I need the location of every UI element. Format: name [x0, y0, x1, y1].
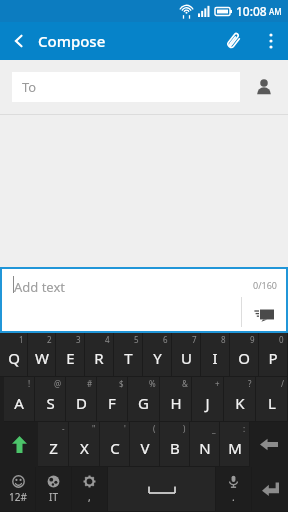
staticText: N: [199, 438, 211, 458]
button[interactable]: 0: [259, 333, 287, 376]
button[interactable]: To: [12, 72, 240, 102]
staticText: &: [182, 378, 188, 389]
staticText: L: [268, 393, 276, 413]
button[interactable]: 2: [28, 333, 55, 376]
button[interactable]: (: [130, 422, 159, 466]
staticText: J: [205, 393, 210, 413]
button[interactable]: Back: [0, 22, 38, 60]
button[interactable]: 5: [114, 333, 142, 376]
staticText: %: [149, 378, 156, 389]
staticText: 8: [221, 334, 226, 345]
staticText: ,: [88, 490, 91, 504]
button[interactable]: /: [256, 377, 287, 421]
staticText: !: [28, 378, 31, 389]
staticText: R: [94, 348, 104, 368]
staticText: IT: [49, 490, 58, 504]
staticText: Z: [49, 438, 58, 458]
button[interactable]: 8: [201, 333, 229, 376]
button[interactable]: %: [128, 377, 159, 421]
staticText: T: [124, 348, 133, 368]
staticText: 0/160: [253, 279, 277, 291]
staticText: A: [14, 393, 24, 413]
staticText: ): [183, 423, 186, 434]
staticText: D: [76, 393, 87, 413]
button[interactable]: 7: [172, 333, 200, 376]
staticText: -: [62, 423, 65, 434]
staticText: AM: [269, 6, 282, 17]
staticText: C: [110, 438, 120, 458]
button[interactable]: Shift: [0, 422, 38, 467]
button[interactable]: Add text: [2, 269, 286, 331]
staticText: 0: [279, 334, 284, 345]
button[interactable]: ?: [224, 377, 255, 421]
button[interactable]: Attach: [214, 22, 254, 60]
button[interactable]: Enter: [252, 467, 288, 511]
button[interactable]: $: [97, 377, 127, 421]
staticText: B: [170, 438, 180, 458]
staticText: /: [281, 378, 284, 389]
staticText: X: [80, 438, 89, 458]
staticText: Add text: [14, 278, 66, 296]
staticText: 6: [163, 334, 168, 345]
button[interactable]: Choose contact: [240, 60, 288, 114]
staticText: E: [66, 348, 75, 368]
staticText: 7: [192, 334, 197, 345]
button[interactable]: -: [38, 422, 68, 466]
button[interactable]: +: [192, 377, 223, 421]
button[interactable]: &: [160, 377, 191, 421]
staticText: S: [46, 393, 55, 413]
button[interactable]: 4: [85, 333, 113, 376]
button[interactable]: 1: [0, 333, 27, 376]
staticText: 3: [76, 334, 81, 345]
staticText: 2: [47, 334, 52, 345]
button[interactable]: 9: [230, 333, 258, 376]
button[interactable]: #: [66, 377, 96, 421]
staticText: Y: [153, 348, 162, 368]
staticText: F: [108, 393, 116, 413]
staticText: (: [153, 423, 156, 434]
button[interactable]: Settings: [72, 467, 107, 511]
staticText: H: [170, 393, 182, 413]
staticText: Q: [8, 348, 20, 368]
button[interactable]: ): [160, 422, 189, 466]
button[interactable]: ": [69, 422, 99, 466]
staticText: 10:08: [236, 3, 267, 19]
button[interactable]: Language: [36, 467, 71, 511]
staticText: 4: [105, 334, 110, 345]
button[interactable]: Space: [108, 467, 215, 511]
staticText: :: [243, 423, 246, 434]
staticText: M: [228, 438, 242, 458]
button[interactable]: _: [190, 422, 219, 466]
button[interactable]: More options: [254, 22, 288, 60]
button[interactable]: 6: [143, 333, 171, 376]
button[interactable]: :: [220, 422, 249, 466]
button[interactable]: @: [35, 377, 65, 421]
staticText: ": [92, 423, 96, 434]
staticText: 9: [250, 334, 255, 345]
button[interactable]: ': [100, 422, 129, 466]
staticText: ': [124, 423, 126, 434]
staticText: O: [238, 348, 250, 368]
staticText: #: [87, 378, 93, 389]
button[interactable]: Send: [242, 297, 286, 331]
button[interactable]: Backspace: [250, 422, 288, 467]
staticText: +: [215, 378, 220, 389]
staticText: _: [212, 423, 216, 434]
button[interactable]: 3: [56, 333, 84, 376]
staticText: 1: [19, 334, 24, 345]
staticText: W: [35, 348, 49, 368]
staticText: .: [232, 490, 235, 504]
staticText: @: [54, 378, 62, 389]
staticText: 12#: [9, 490, 27, 504]
staticText: 5: [134, 334, 139, 345]
staticText: U: [181, 348, 192, 368]
staticText: G: [138, 393, 149, 413]
staticText: I: [212, 348, 218, 368]
staticText: K: [235, 393, 245, 413]
button[interactable]: Emoji: [0, 467, 35, 511]
button[interactable]: !: [4, 377, 34, 421]
staticText: To: [22, 78, 37, 96]
button[interactable]: Voice input: [216, 467, 251, 511]
staticText: ?: [248, 378, 252, 389]
staticText: V: [140, 438, 150, 458]
